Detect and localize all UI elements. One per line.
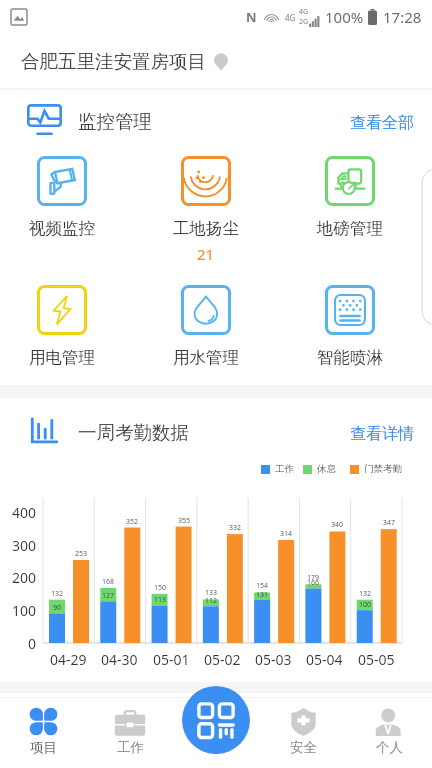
staticText: 133 bbox=[205, 588, 218, 598]
staticText: 253 bbox=[75, 549, 88, 559]
staticText: 113 bbox=[154, 595, 167, 605]
staticText: 视频监控 bbox=[29, 218, 95, 239]
staticText: 工作 bbox=[117, 739, 144, 756]
staticText: 154 bbox=[256, 581, 269, 591]
staticText: 工作 bbox=[275, 463, 294, 475]
staticText: 314 bbox=[280, 529, 293, 539]
staticText: 127 bbox=[102, 591, 115, 601]
staticText: 用水管理 bbox=[173, 347, 239, 368]
staticText: 4G bbox=[299, 7, 309, 17]
staticText: 150 bbox=[154, 583, 167, 593]
button[interactable]: 工作 bbox=[95, 703, 165, 761]
staticText: 用电管理 bbox=[29, 347, 95, 368]
staticText: 4G bbox=[285, 12, 296, 23]
staticText: 132 bbox=[51, 589, 64, 599]
button[interactable]: 项目 bbox=[8, 703, 78, 761]
staticText: 工地扬尘 bbox=[173, 218, 239, 239]
button[interactable]: 查看全部 bbox=[350, 113, 414, 133]
staticText: 21 bbox=[197, 244, 215, 264]
staticText: 17:28 bbox=[383, 7, 422, 27]
staticText: 332 bbox=[229, 523, 242, 533]
staticText: 0 bbox=[28, 634, 37, 652]
staticText: 90 bbox=[53, 603, 62, 613]
staticText: 112 bbox=[205, 596, 218, 606]
staticText: 355 bbox=[178, 516, 191, 526]
staticText: 个人 bbox=[376, 739, 403, 756]
staticText: 100 bbox=[12, 601, 37, 619]
button[interactable]: 用电管理 bbox=[12, 285, 112, 368]
button[interactable]: 地磅管理 bbox=[300, 156, 400, 239]
staticText: 400 bbox=[12, 503, 37, 521]
button[interactable]: 安全 bbox=[268, 703, 338, 761]
button[interactable]: 用水管理 bbox=[156, 285, 256, 368]
staticText: 132 bbox=[359, 589, 372, 599]
button[interactable]: 合肥五里洼安置房项目 bbox=[21, 50, 228, 73]
staticText: 04-30 bbox=[101, 650, 138, 669]
staticText: 2G bbox=[299, 17, 309, 27]
staticText: 05-04 bbox=[306, 650, 343, 669]
staticText: 安全 bbox=[290, 739, 317, 756]
staticText: 300 bbox=[12, 536, 37, 554]
staticText: 监控管理 bbox=[78, 110, 152, 133]
staticText: 04-29 bbox=[50, 650, 87, 669]
button[interactable]: 智能喷淋 bbox=[300, 285, 400, 368]
staticText: 05-01 bbox=[153, 650, 190, 669]
staticText: 一周考勤数据 bbox=[78, 421, 189, 444]
staticText: 131 bbox=[256, 590, 269, 600]
staticText: 200 bbox=[12, 568, 37, 586]
button[interactable]: 视频监控 bbox=[12, 156, 112, 239]
staticText: 05-03 bbox=[255, 650, 292, 669]
button[interactable]: 扫一扫 bbox=[182, 686, 250, 754]
staticText: 05-05 bbox=[358, 650, 395, 669]
staticText: 166 bbox=[307, 578, 320, 588]
staticText: N bbox=[246, 8, 257, 26]
staticText: 休息 bbox=[317, 463, 336, 475]
staticText: 347 bbox=[383, 518, 396, 528]
button[interactable]: 个人 bbox=[354, 703, 424, 761]
staticText: 项目 bbox=[30, 739, 57, 756]
staticText: 查看详情 bbox=[350, 424, 414, 444]
staticText: 门禁考勤 bbox=[364, 463, 402, 475]
button[interactable]: 工地扬尘 bbox=[156, 156, 256, 264]
staticText: 179 bbox=[307, 573, 320, 583]
staticText: 352 bbox=[126, 517, 139, 527]
staticText: 05-02 bbox=[204, 650, 241, 669]
staticText: 168 bbox=[102, 577, 115, 587]
staticText: 智能喷淋 bbox=[317, 347, 383, 368]
staticText: 地磅管理 bbox=[317, 218, 383, 239]
staticText: 100% bbox=[325, 7, 364, 27]
staticText: 查看全部 bbox=[350, 113, 414, 133]
button[interactable]: 查看详情 bbox=[350, 424, 414, 444]
staticText: 340 bbox=[331, 520, 344, 530]
staticText: 合肥五里洼安置房项目 bbox=[21, 50, 206, 73]
staticText: 100 bbox=[359, 600, 372, 610]
